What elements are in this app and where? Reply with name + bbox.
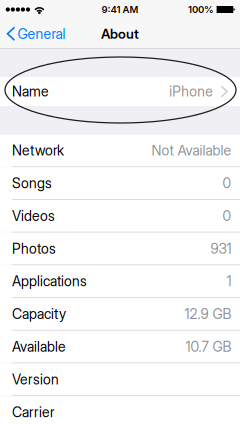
staticText: Videos [12,207,55,224]
button[interactable]: Version [0,363,240,395]
staticText: 0 [222,175,231,192]
button[interactable]: Available [0,331,240,362]
staticText: Not Available [151,142,231,159]
staticText: Carrier [12,404,55,420]
staticText: About [101,25,139,42]
button[interactable]: Songs [0,167,240,199]
staticText: Songs [12,175,52,192]
button[interactable]: Videos [0,200,240,232]
button[interactable]: Name [0,77,240,106]
staticText: 1 [226,273,231,290]
staticText: Network [12,142,64,159]
staticText: Photos [12,240,56,257]
staticText: Capacity [12,305,66,322]
staticText: Available [12,338,66,355]
button[interactable]: Photos [0,233,240,264]
staticText: 10.7 GB [185,338,231,355]
button[interactable]: Capacity [0,298,240,330]
staticText: iPhone [169,83,213,100]
staticText: 9:41 AM [101,4,138,15]
staticText: 931 [210,240,231,257]
button[interactable]: General [0,19,71,48]
staticText: 0 [222,207,231,224]
staticText: Version [12,371,59,388]
button[interactable]: Carrier [0,396,240,424]
staticText: 100% [188,4,214,15]
staticText: General [17,25,65,42]
staticText: Applications [12,273,87,290]
button[interactable]: Applications [0,265,240,297]
button[interactable]: Network [0,135,240,166]
staticText: 12.9 GB [184,305,231,322]
staticText: Name [12,83,49,100]
